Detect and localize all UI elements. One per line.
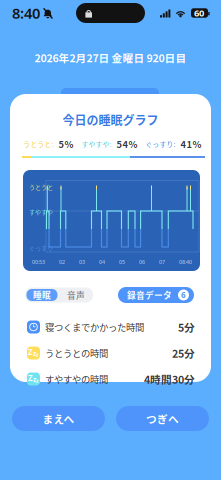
staticText: 2026年2月27日 金曜日 920日目 <box>34 50 186 65</box>
staticText: ぐっすり <box>29 243 53 252</box>
button[interactable]: つぎへ <box>116 406 209 431</box>
staticText: 00:53 <box>32 258 45 266</box>
staticText: 60 <box>194 7 204 19</box>
staticText: z <box>36 377 39 384</box>
staticText: Z <box>28 372 33 383</box>
staticText: z <box>36 351 39 358</box>
staticText: まえへ <box>42 411 74 426</box>
staticText: 5分 <box>178 319 195 335</box>
staticText: 54% <box>116 137 137 151</box>
staticText: 音声 <box>67 289 85 301</box>
button[interactable]: まえへ <box>12 406 105 431</box>
staticText: 02 <box>59 258 65 266</box>
staticText: すやすや: <box>81 139 111 149</box>
staticText: 録音データ <box>127 289 172 301</box>
button[interactable]: Z <box>10 340 211 366</box>
staticText: 07 <box>159 258 165 266</box>
staticText: 05 <box>119 258 125 266</box>
button[interactable]: 寝つくまでかかった時間 <box>10 314 211 340</box>
staticText: 25分 <box>172 345 195 361</box>
staticText: 04 <box>99 258 105 266</box>
staticText: z <box>33 375 36 384</box>
staticText: 睡眠 <box>33 289 51 301</box>
staticText: 08:40 <box>179 258 192 266</box>
staticText: 4時間30分 <box>144 371 195 387</box>
staticText: 寝つくまでかかった時間 <box>45 320 144 334</box>
staticText: Z <box>28 346 33 357</box>
button[interactable]: 睡眠 <box>25 287 59 302</box>
staticText: つぎへ <box>146 411 179 426</box>
staticText: すやすや <box>29 207 53 216</box>
staticText: うとうとの時間 <box>45 346 108 360</box>
staticText: 今日の睡眠グラフ <box>62 111 158 128</box>
staticText: うとうと: <box>23 139 53 149</box>
button[interactable]: 録音データ <box>118 287 194 303</box>
staticText: 41% <box>180 137 201 151</box>
staticText: 06 <box>139 258 145 266</box>
button[interactable]: Z <box>10 366 211 392</box>
staticText: ぐっすり: <box>145 139 175 149</box>
staticText: 5% <box>58 137 73 151</box>
staticText: 8:40 <box>12 3 40 23</box>
staticText: 6 <box>181 290 186 300</box>
staticText: うとうと <box>29 182 53 191</box>
staticText: 03 <box>79 258 85 266</box>
staticText: z <box>33 349 36 358</box>
staticText: すやすやの時間 <box>45 372 108 386</box>
button[interactable]: 音声 <box>59 287 93 302</box>
